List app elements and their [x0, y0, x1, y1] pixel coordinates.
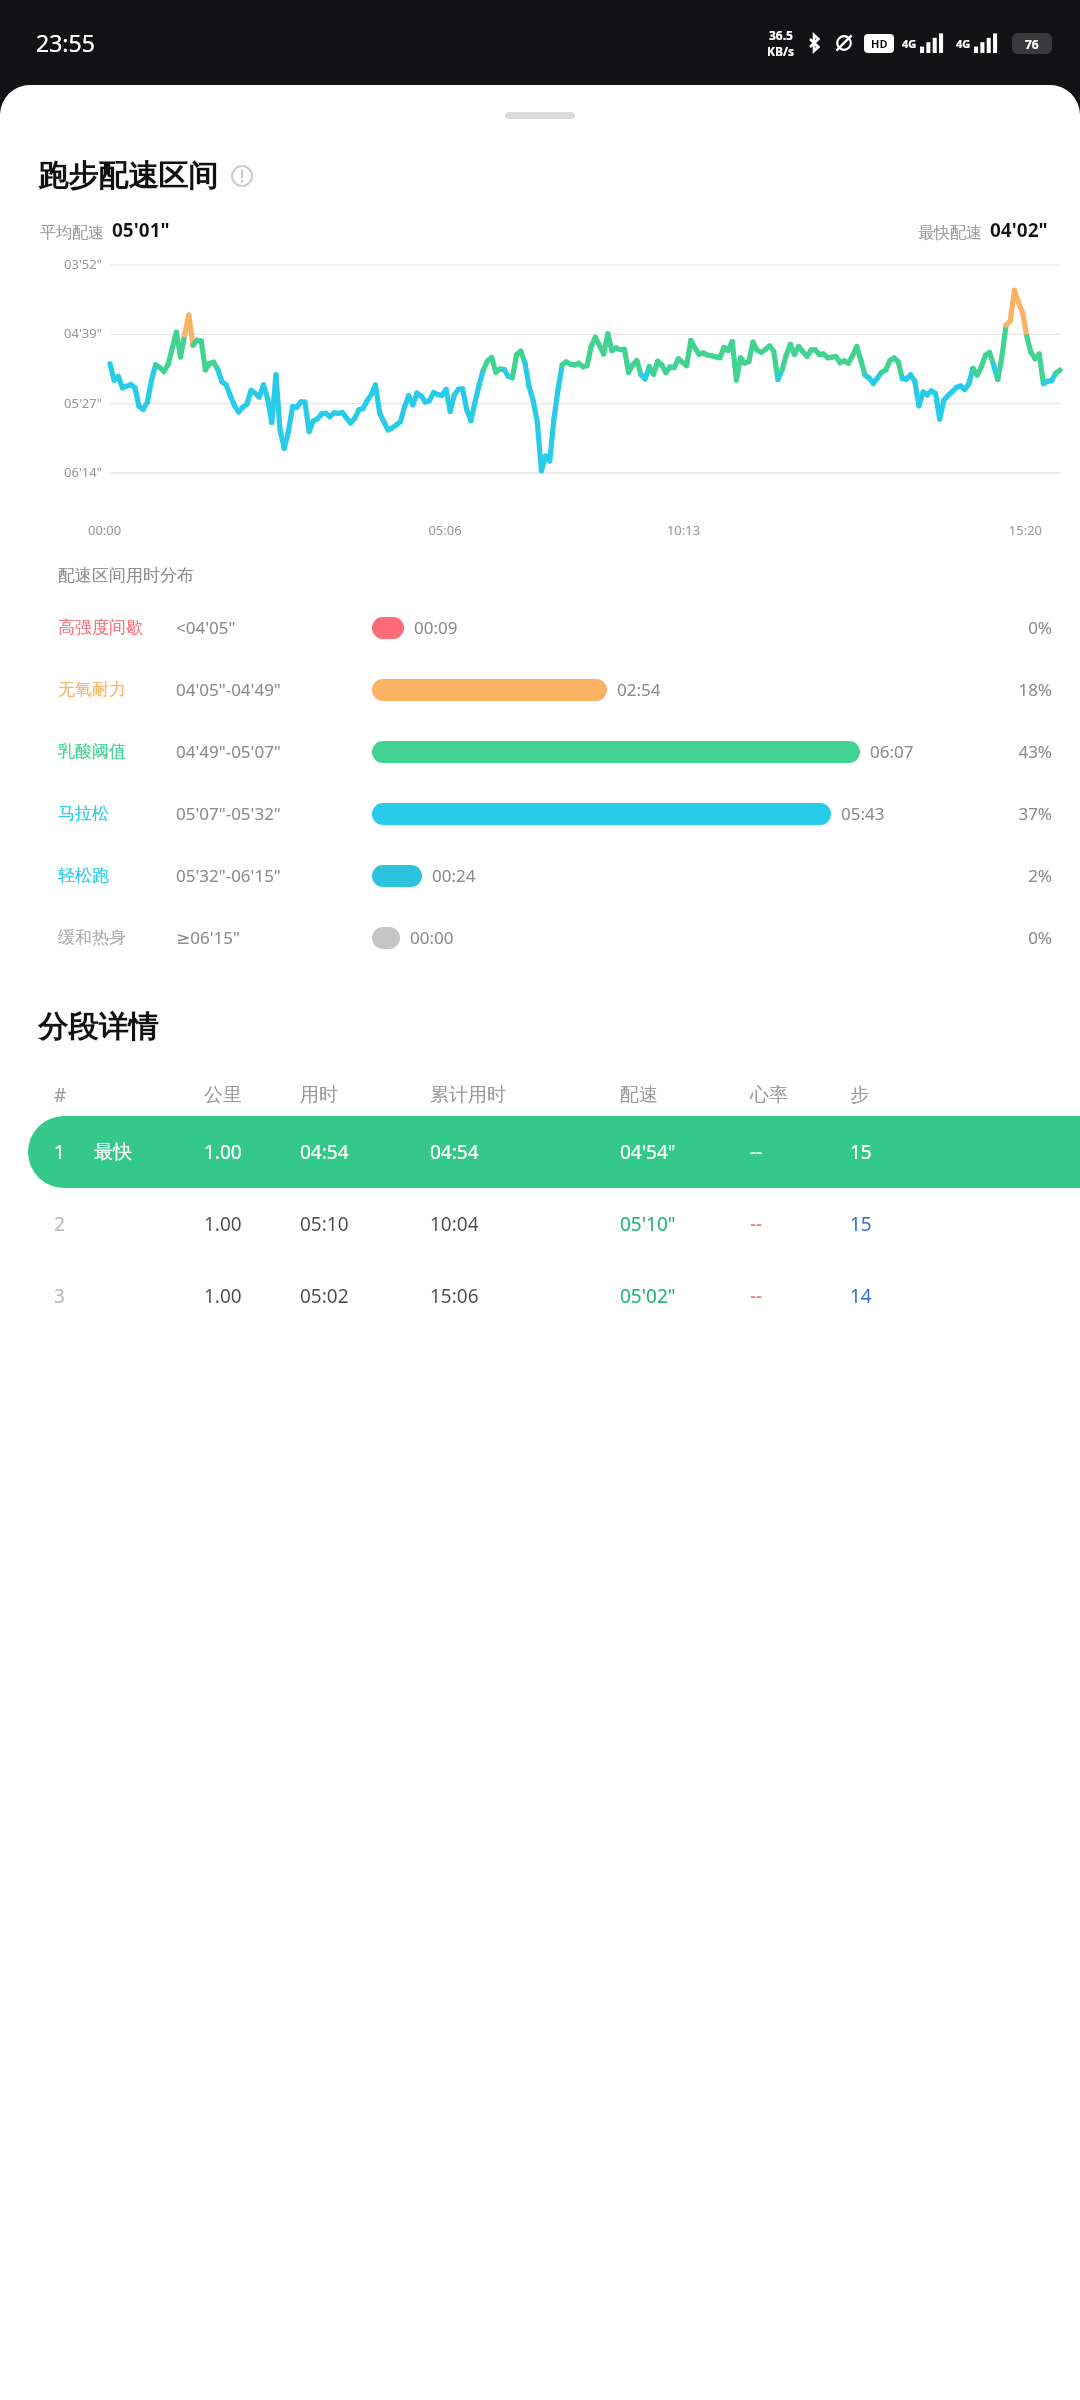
staticText: 02:54	[617, 678, 661, 701]
button[interactable]: 缓和热身	[0, 906, 1080, 968]
staticText: 37%	[960, 802, 1052, 825]
staticText: 用时	[300, 1083, 338, 1107]
button[interactable]: Drag handle	[505, 112, 575, 119]
button[interactable]: 乳酸阈值	[0, 720, 1080, 782]
staticText: 配速区间用时分布	[58, 565, 194, 586]
button[interactable]: 2	[0, 1188, 1080, 1260]
staticText: 04'49"-05'07"	[176, 740, 281, 763]
staticText: 05:06	[326, 521, 564, 539]
staticText: 累计用时	[430, 1083, 506, 1107]
staticText: 04'02"	[990, 217, 1048, 243]
staticText: 05'02"	[620, 1283, 676, 1309]
staticText: 06:07	[870, 740, 914, 763]
staticText: 最快配速	[918, 223, 982, 243]
staticText: #	[54, 1082, 67, 1108]
staticText: 05'32"-06'15"	[176, 864, 281, 887]
staticText: 04'05"-04'49"	[176, 678, 281, 701]
staticText: 05'27"	[10, 394, 102, 412]
staticText: 1.00	[204, 1139, 242, 1165]
staticText: 04'39"	[10, 324, 102, 342]
staticText: 00:00	[88, 521, 326, 539]
button[interactable]: Info	[230, 164, 254, 188]
staticText: 36.5	[769, 27, 793, 43]
staticText: 公里	[204, 1083, 242, 1107]
staticText: 00:09	[414, 616, 458, 639]
staticText: 无氧耐力	[58, 679, 126, 700]
staticText: 步	[850, 1083, 869, 1107]
staticText: 最快	[94, 1140, 132, 1164]
staticText: 乳酸阈值	[58, 741, 126, 762]
staticText: 2	[54, 1211, 65, 1237]
staticText: 轻松跑	[58, 865, 109, 886]
staticText: 05:02	[300, 1283, 349, 1309]
staticText: 1.00	[204, 1283, 242, 1309]
staticText: 马拉松	[58, 803, 109, 824]
staticText: 15:06	[430, 1283, 479, 1309]
staticText: 4G	[902, 36, 917, 51]
staticText: 00:00	[410, 926, 454, 949]
staticText: HD	[871, 36, 888, 51]
staticText: 15	[850, 1211, 872, 1237]
button[interactable]: 轻松跑	[0, 844, 1080, 906]
staticText: 05:10	[300, 1211, 349, 1237]
staticText: 10:13	[564, 521, 803, 539]
staticText: --	[750, 1283, 763, 1309]
staticText: 05'10"	[620, 1211, 676, 1237]
staticText: 2%	[960, 864, 1052, 887]
button[interactable]: 高强度间歇	[0, 596, 1080, 658]
staticText: 0%	[960, 926, 1052, 949]
staticText: 高强度间歇	[58, 617, 143, 638]
staticText: --	[750, 1211, 763, 1237]
button[interactable]: 1	[28, 1116, 1080, 1188]
staticText: 04:54	[300, 1139, 349, 1165]
staticText: 分段详情	[38, 1008, 158, 1046]
staticText: 00:24	[432, 864, 476, 887]
staticText: 23:55	[36, 27, 95, 58]
button[interactable]: 无氧耐力	[0, 658, 1080, 720]
staticText: 0%	[960, 616, 1052, 639]
staticText: 18%	[960, 678, 1052, 701]
button[interactable]: 3	[0, 1260, 1080, 1332]
staticText: 4G	[956, 36, 971, 51]
staticText: 缓和热身	[58, 927, 126, 948]
staticText: 15:20	[803, 521, 1042, 539]
staticText: 3	[54, 1283, 65, 1309]
staticText: 15	[850, 1139, 872, 1165]
staticText: 05'01"	[112, 217, 170, 243]
staticText: 1.00	[204, 1211, 242, 1237]
staticText: 04'54"	[620, 1139, 676, 1165]
button[interactable]: 马拉松	[0, 782, 1080, 844]
staticText: 76	[1025, 36, 1039, 52]
staticText: 平均配速	[40, 223, 104, 243]
staticText: 05'07"-05'32"	[176, 802, 281, 825]
staticText: --	[750, 1139, 763, 1165]
staticText: 跑步配速区间	[38, 157, 218, 195]
staticText: ≥06'15"	[176, 926, 240, 949]
staticText: 配速	[620, 1083, 658, 1107]
staticText: KB/s	[767, 43, 794, 59]
staticText: 05:43	[841, 802, 885, 825]
staticText: 10:04	[430, 1211, 479, 1237]
staticText: 1	[54, 1139, 65, 1165]
staticText: 06'14"	[10, 463, 102, 481]
staticText: 43%	[960, 740, 1052, 763]
staticText: 03'52"	[10, 255, 102, 273]
staticText: 14	[850, 1283, 872, 1309]
staticText: <04'05"	[176, 616, 236, 639]
staticText: 心率	[750, 1083, 788, 1107]
staticText: 04:54	[430, 1139, 479, 1165]
